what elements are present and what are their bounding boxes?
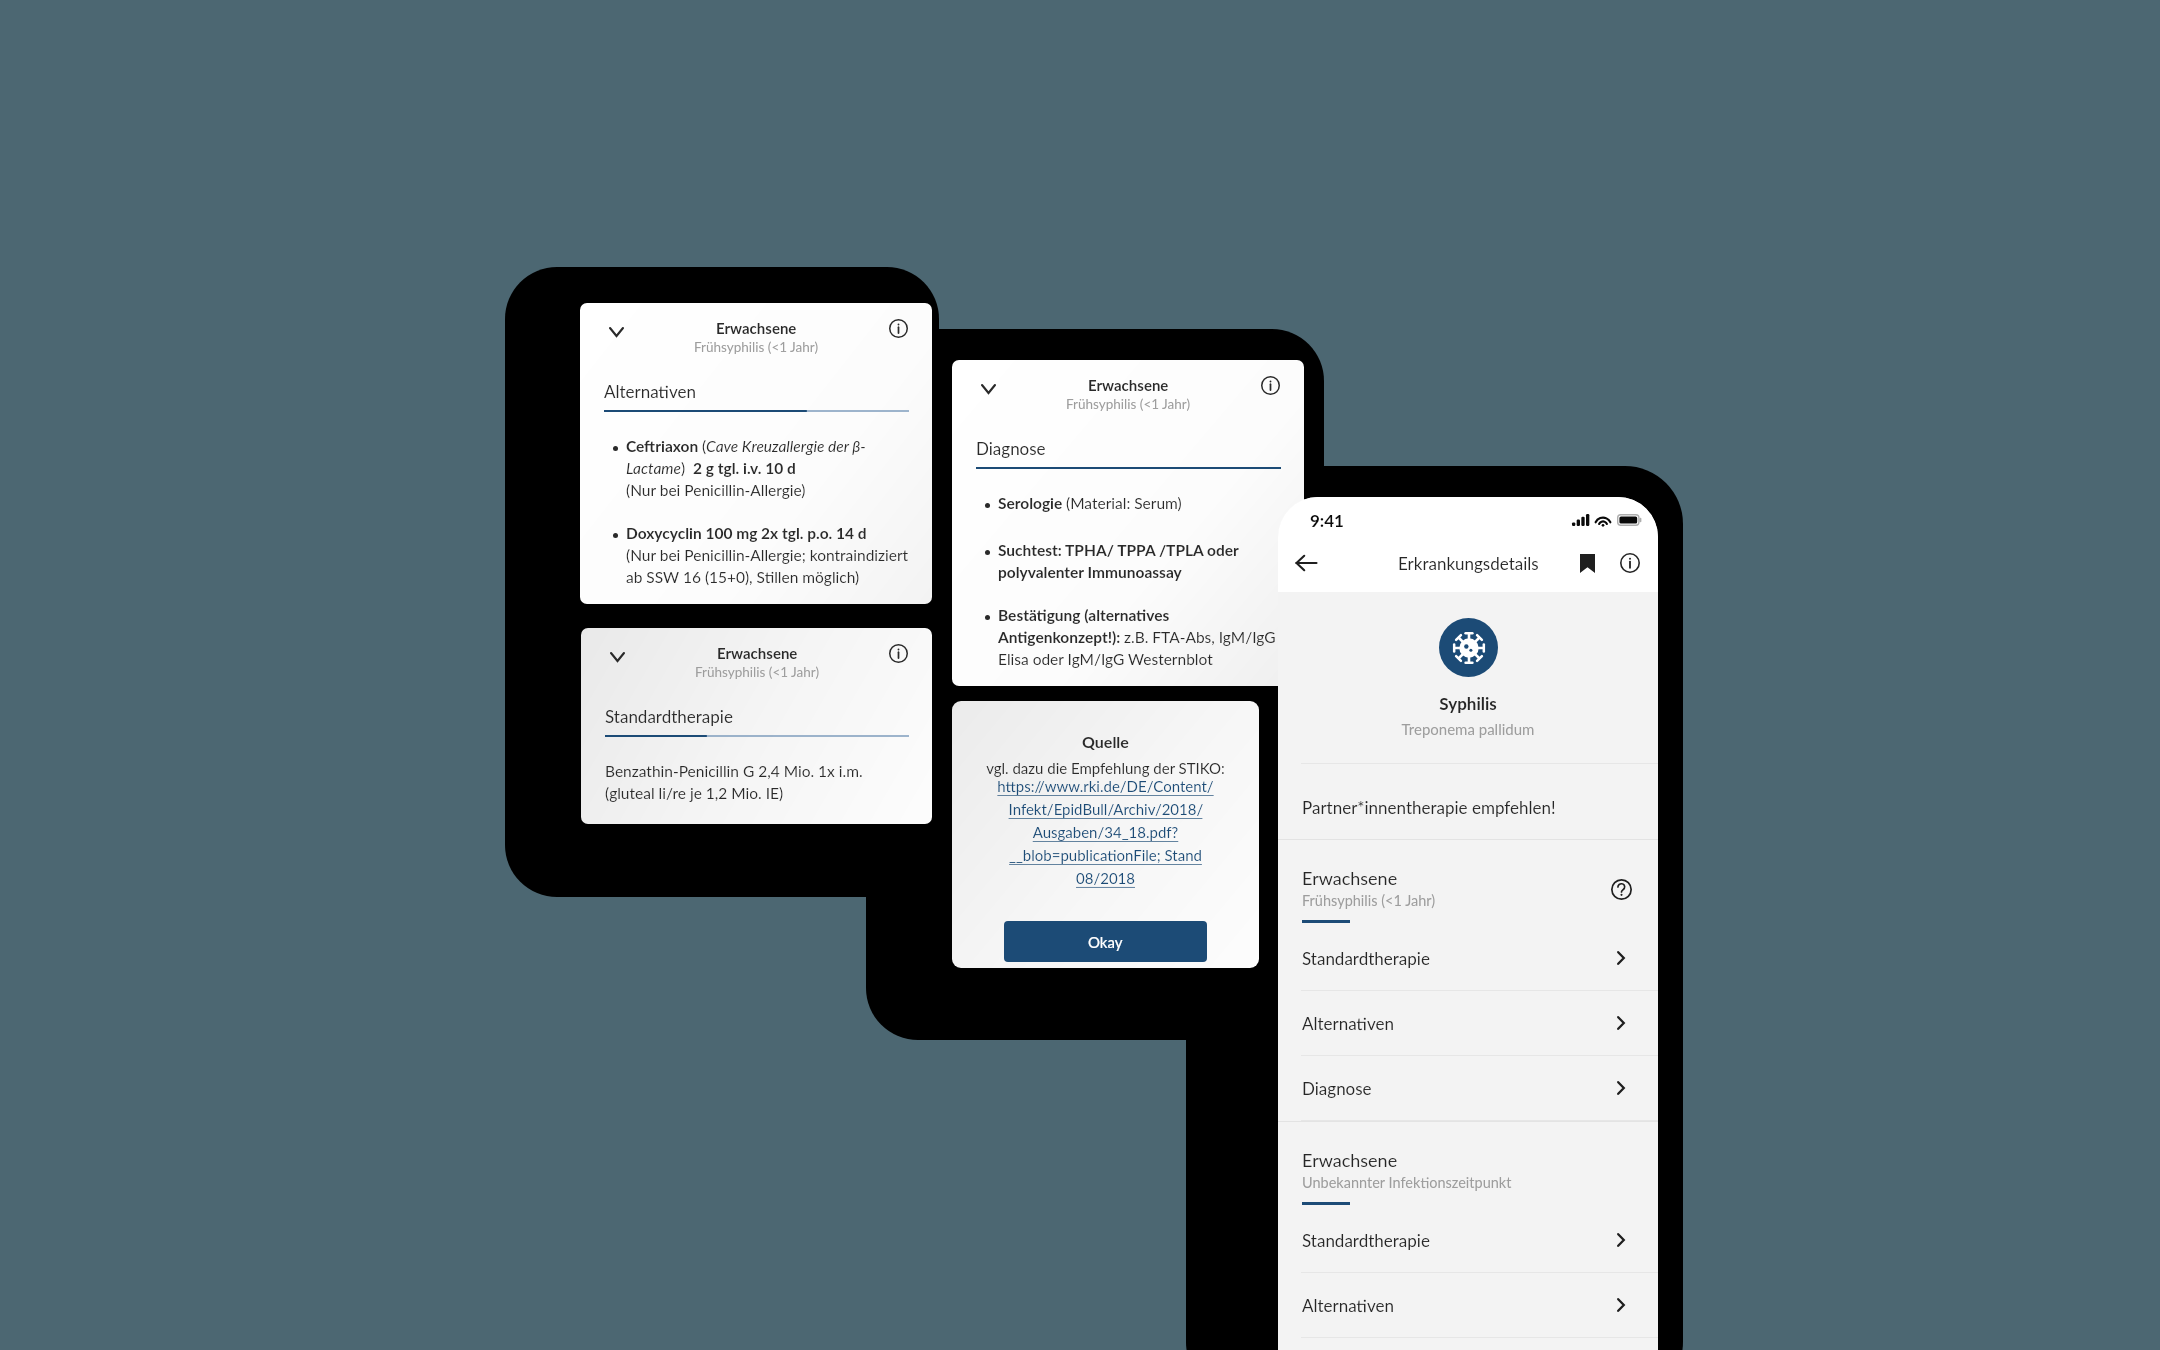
staticText: Diagnose xyxy=(976,438,1046,458)
staticText: Doxycyclin 100 mg 2x tgl. p.o. 14 d (Nur… xyxy=(626,524,909,586)
staticText: Partner*innentherapie empfehlen! xyxy=(1302,797,1556,817)
staticText: Standardtherapie xyxy=(605,706,733,726)
button[interactable]: Diagnose xyxy=(1278,1056,1658,1120)
staticText: Quelle xyxy=(1082,732,1129,751)
staticText: Standardtherapie xyxy=(1302,1230,1430,1250)
button[interactable]: Standardtherapie xyxy=(1278,1208,1658,1272)
staticText: Benzathin-Penicillin G 2,4 Mio. 1x i.m. … xyxy=(605,762,863,802)
staticText: Alternativen xyxy=(1302,1295,1394,1315)
staticText: 9:41 xyxy=(1310,510,1344,530)
staticText: Erwachsene xyxy=(716,319,797,337)
staticText: Treponema pallidum xyxy=(1278,720,1658,738)
button[interactable]: Zuklappen xyxy=(605,645,629,669)
staticText: Bestätigung (alternatives Antigenkonzept… xyxy=(998,606,1281,668)
staticText: Erwachsene xyxy=(1302,867,1398,889)
button[interactable]: Alternativen xyxy=(1278,1273,1658,1337)
staticText: Erwachsene xyxy=(1088,376,1169,394)
staticText: Unbekannter Infektionszeitpunkt xyxy=(1302,1174,1512,1191)
staticText: Diagnose xyxy=(1302,1078,1372,1098)
staticText: Erkrankungsdetails xyxy=(1398,553,1539,573)
staticText: Erwachsene xyxy=(717,644,798,662)
button[interactable]: Lesezeichen xyxy=(1571,547,1603,579)
button[interactable]: Info xyxy=(887,317,909,339)
button[interactable]: Okay xyxy=(1004,921,1207,962)
staticText: Okay xyxy=(1088,933,1123,951)
staticText: Erwachsene xyxy=(1302,1149,1398,1171)
staticText: vgl. dazu die Empfehlung der STIKO: xyxy=(986,759,1225,777)
staticText: Frühsyphilis (<1 Jahr) xyxy=(1066,396,1191,412)
button[interactable]: Zuklappen xyxy=(976,377,1000,401)
button[interactable]: Hilfe xyxy=(1605,873,1637,905)
staticText: Frühsyphilis (<1 Jahr) xyxy=(694,339,819,355)
button[interactable]: Alternativen xyxy=(1278,991,1658,1055)
button[interactable]: Standardtherapie xyxy=(1278,926,1658,990)
staticText: Alternativen xyxy=(604,381,696,401)
staticText: Alternativen xyxy=(1302,1013,1394,1033)
button[interactable]: Info xyxy=(1614,547,1646,579)
staticText: Serologie (Material: Serum) xyxy=(998,494,1281,513)
staticText: Frühsyphilis (<1 Jahr) xyxy=(1302,892,1436,909)
button[interactable]: Zurück xyxy=(1291,548,1321,578)
staticText: Frühsyphilis (<1 Jahr) xyxy=(695,664,820,680)
staticText: Syphilis xyxy=(1278,693,1658,713)
button[interactable]: Partner*innentherapie empfehlen! xyxy=(1278,764,1658,839)
staticText: Standardtherapie xyxy=(1302,948,1430,968)
button[interactable]: Zuklappen xyxy=(604,320,628,344)
staticText: Ceftriaxon (Cave Kreuzallergie der β-Lac… xyxy=(626,437,909,499)
button[interactable]: Info xyxy=(887,642,909,664)
staticText: https://www.rki.de/DE/Content/Infekt/Epi… xyxy=(978,777,1233,887)
staticText: Suchtest: TPHA/ TPPA /TPLA oder polyvale… xyxy=(998,541,1281,581)
button[interactable]: Info xyxy=(1259,374,1281,396)
